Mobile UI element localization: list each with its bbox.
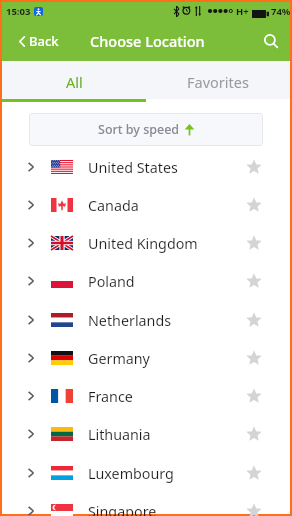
button[interactable]: Poland — [2, 262, 290, 300]
button[interactable]: Canada — [2, 186, 290, 224]
staticText: United Kingdom — [88, 234, 198, 253]
staticText: Lithuania — [88, 425, 151, 444]
button[interactable]: Singapore — [2, 492, 290, 516]
button[interactable]: United States — [2, 148, 290, 186]
button[interactable]: Search — [252, 26, 290, 56]
staticText: Poland — [88, 272, 135, 291]
button[interactable]: Back — [2, 26, 69, 56]
staticText: Sort by speed — [98, 121, 180, 138]
staticText: Luxembourg — [88, 464, 174, 483]
staticText: Germany — [88, 349, 150, 368]
staticText: Singapore — [88, 502, 157, 516]
button[interactable]: Lithuania — [2, 415, 290, 453]
button[interactable]: Sort by speed — [29, 113, 263, 146]
staticText: Netherlands — [88, 311, 172, 330]
button[interactable]: France — [2, 377, 290, 415]
staticText: 15:03 — [6, 5, 31, 18]
staticText: United States — [88, 158, 178, 177]
staticText: H+ — [236, 5, 249, 18]
staticText: 74% — [271, 5, 291, 18]
staticText: Choose Location — [90, 31, 205, 51]
button[interactable]: Germany — [2, 339, 290, 377]
staticText: Canada — [88, 196, 139, 215]
button[interactable]: Luxembourg — [2, 454, 290, 492]
staticText: Back — [29, 32, 59, 50]
button[interactable]: All — [2, 61, 146, 99]
staticText: All — [66, 72, 83, 92]
button[interactable]: United Kingdom — [2, 224, 290, 262]
button[interactable]: Favorites — [146, 61, 290, 99]
button[interactable]: Netherlands — [2, 301, 290, 339]
staticText: France — [88, 387, 133, 406]
staticText: Favorites — [187, 72, 249, 92]
